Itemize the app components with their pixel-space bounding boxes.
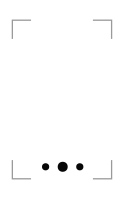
button[interactable]: Page 3 [76, 163, 83, 170]
button[interactable]: Page 2, current page [58, 162, 68, 172]
button[interactable]: Page 1 [42, 163, 49, 170]
button[interactable]: Scan [0, 0, 128, 199]
